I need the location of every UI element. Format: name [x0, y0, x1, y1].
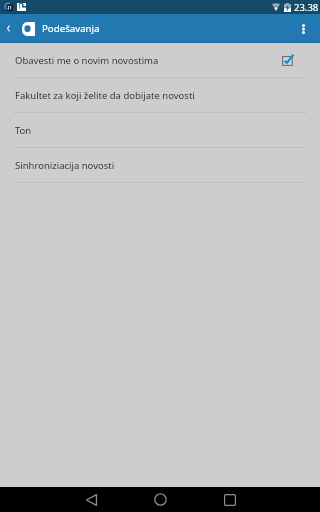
button[interactable]: Home — [126, 487, 195, 512]
button[interactable]: Back — [57, 487, 126, 512]
button[interactable]: Sinhroniziacija novosti — [0, 148, 320, 182]
staticText: Ton — [15, 124, 32, 137]
button[interactable]: Navigate up — [0, 14, 17, 43]
staticText: Sinhroniziacija novosti — [15, 159, 115, 172]
button[interactable]: Ton — [0, 113, 320, 147]
staticText: Podešavanja — [42, 22, 100, 35]
button[interactable]: More options — [286, 14, 320, 43]
staticText: Obavesti me o novim novostima — [15, 54, 159, 67]
button[interactable]: Obavesti me o novim novostima — [0, 43, 320, 77]
staticText: 23.38 — [294, 1, 319, 14]
staticText: Fakultet za koji želite da dobijate novo… — [15, 89, 195, 102]
button[interactable]: Fakultet za koji želite da dobijate novo… — [0, 78, 320, 112]
button[interactable]: Recent apps — [195, 487, 264, 512]
